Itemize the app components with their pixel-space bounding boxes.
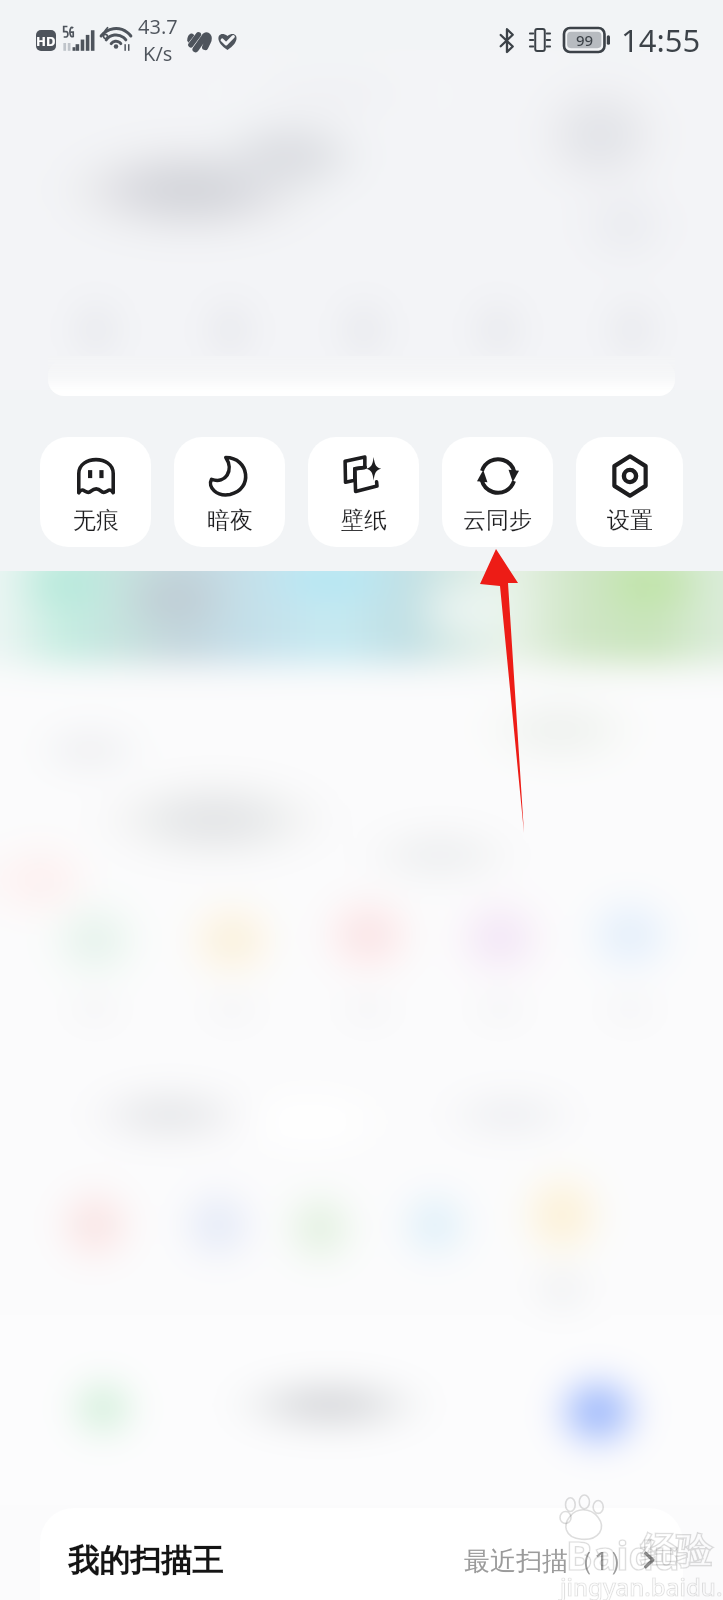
button[interactable]: 无痕 (40, 437, 151, 547)
staticText: 壁纸 (341, 506, 387, 535)
staticText: 无痕 (73, 506, 119, 535)
button[interactable]: 暗夜 (174, 437, 285, 547)
staticText: 我的扫描王 (68, 1541, 223, 1580)
staticText: HD (36, 32, 56, 50)
staticText: 最近扫描（1） (464, 1542, 635, 1578)
staticText: 设置 (607, 506, 653, 535)
staticText: 暗夜 (207, 506, 253, 535)
staticText: 经验 (640, 1528, 712, 1573)
button[interactable]: 最近扫描（1） (464, 1542, 661, 1578)
staticText: 云同步 (463, 506, 532, 535)
staticText: 99 (576, 30, 594, 50)
other: More (637, 1548, 661, 1572)
button[interactable]: 云同步 (442, 437, 553, 547)
button[interactable]: 壁纸 (308, 437, 419, 547)
staticText: 14:55 (621, 19, 701, 61)
staticText: jingyan.baidu.com (560, 1570, 723, 1600)
staticText: 43.7 (138, 13, 178, 40)
staticText: K/s (143, 40, 173, 67)
button[interactable]: 设置 (576, 437, 683, 547)
staticText: Baidu (566, 1527, 680, 1581)
